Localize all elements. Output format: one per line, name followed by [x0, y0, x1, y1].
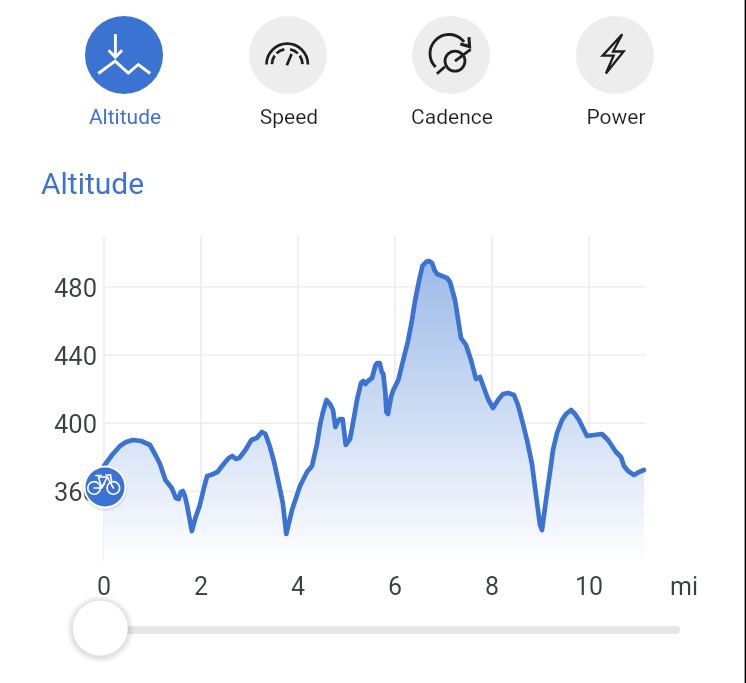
- staticText: 360: [27, 477, 97, 511]
- staticText: 10: [564, 572, 614, 602]
- staticText: 0: [79, 572, 129, 602]
- button[interactable]: Scrub position: [66, 594, 136, 664]
- button[interactable]: Speed: [229, 16, 349, 132]
- staticText: 6: [370, 572, 420, 602]
- staticText: Speed: [229, 105, 349, 135]
- button[interactable]: Altitude: [65, 16, 185, 132]
- staticText: 4: [273, 572, 323, 602]
- staticText: 2: [176, 572, 226, 602]
- staticText: 8: [467, 572, 517, 602]
- button[interactable]: Cadence: [392, 16, 512, 132]
- staticText: Cadence: [392, 105, 512, 135]
- staticText: Altitude: [65, 105, 185, 135]
- button[interactable]: Current position: [80, 462, 130, 512]
- staticText: 400: [27, 409, 97, 443]
- staticText: 480: [27, 273, 97, 307]
- button[interactable]: Power: [556, 16, 676, 132]
- staticText: Altitude: [41, 166, 145, 201]
- staticText: mi: [659, 572, 709, 602]
- staticText: Power: [556, 105, 676, 135]
- staticText: 440: [27, 341, 97, 375]
